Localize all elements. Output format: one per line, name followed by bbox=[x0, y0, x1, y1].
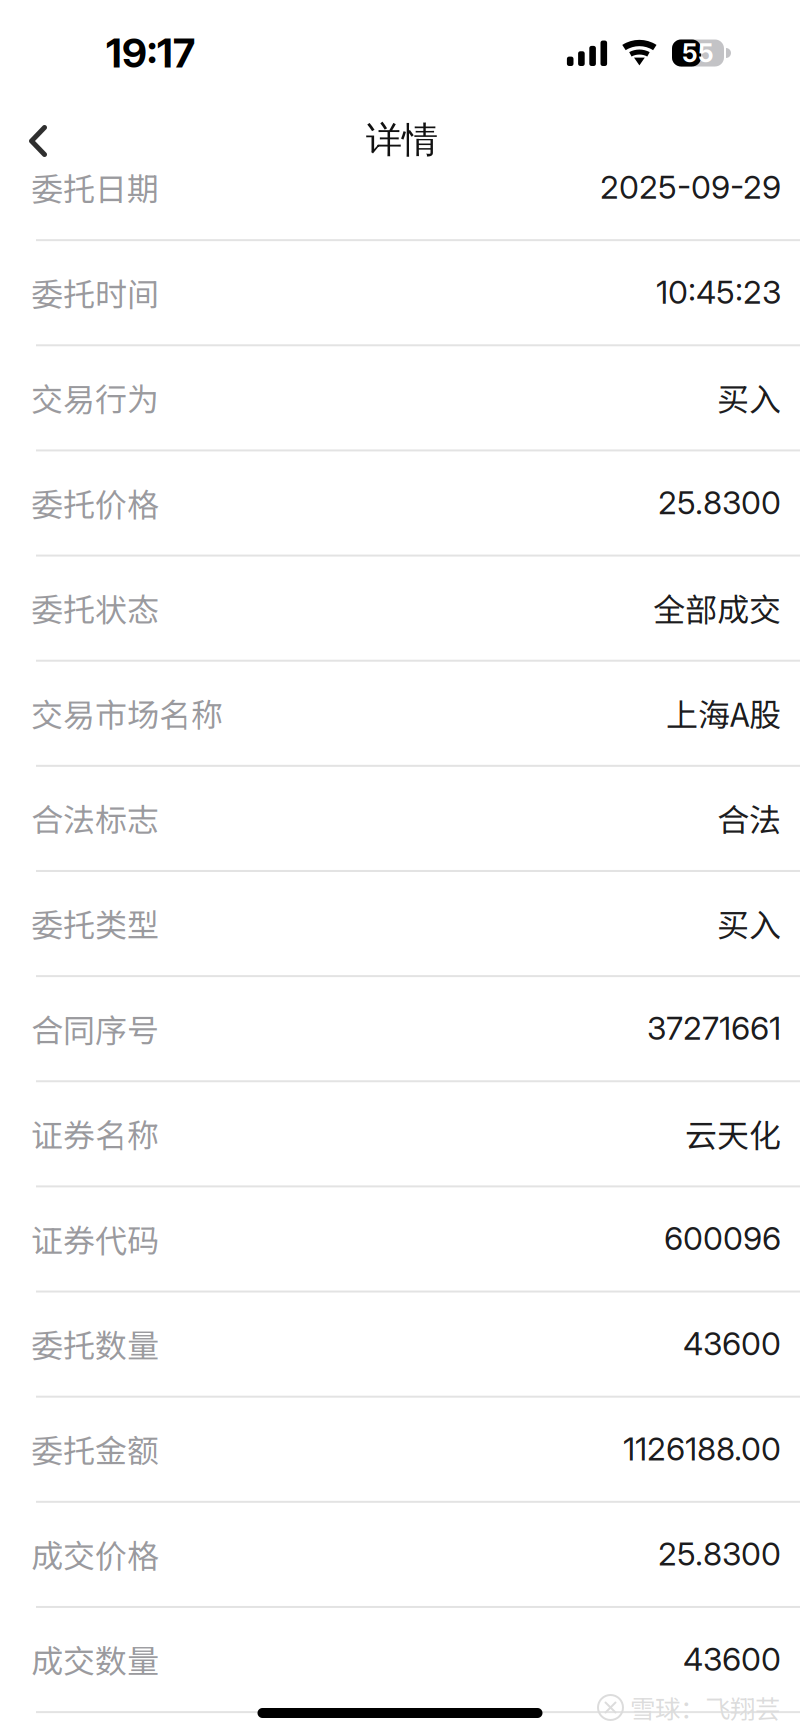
staticText: 证券代码 bbox=[31, 1215, 159, 1262]
staticText: 2025-09-29 bbox=[600, 168, 781, 206]
staticText: 证券名称 bbox=[31, 1110, 159, 1156]
staticText: 合同序号 bbox=[31, 1005, 159, 1051]
staticText: 37271661 bbox=[647, 1009, 781, 1047]
staticText: 上海A股 bbox=[666, 690, 781, 736]
staticText: 25.8300 bbox=[658, 483, 781, 522]
staticText: 交易市场名称 bbox=[31, 690, 223, 736]
button[interactable]: 证券代码 bbox=[0, 1187, 800, 1292]
button[interactable]: 委托价格 bbox=[0, 451, 800, 556]
button[interactable]: 委托类型 bbox=[0, 872, 800, 977]
staticText: 43600 bbox=[683, 1324, 781, 1363]
staticText: 合法标志 bbox=[31, 795, 159, 841]
staticText: 成交价格 bbox=[31, 1531, 159, 1577]
button[interactable]: 交易市场名称 bbox=[0, 662, 800, 767]
staticText: 1126188.00 bbox=[623, 1429, 781, 1468]
button[interactable]: Back bbox=[20, 101, 92, 173]
staticText: 详情 bbox=[366, 117, 438, 163]
staticText: 委托类型 bbox=[31, 900, 159, 946]
button[interactable]: 交易行为 bbox=[0, 346, 800, 451]
staticText: 委托价格 bbox=[31, 479, 159, 526]
staticText: 买入 bbox=[717, 900, 781, 946]
staticText: 600096 bbox=[664, 1219, 781, 1258]
staticText: 全部成交 bbox=[653, 584, 781, 631]
staticText: 雪球：飞翔芸 bbox=[630, 1689, 780, 1726]
button[interactable]: 委托日期 bbox=[0, 136, 800, 241]
button[interactable]: 委托状态 bbox=[0, 557, 800, 662]
button[interactable]: 成交数量 bbox=[0, 1608, 800, 1713]
staticText: 55 bbox=[682, 38, 714, 68]
staticText: 10:45:23 bbox=[656, 273, 781, 312]
button[interactable]: 合同序号 bbox=[0, 977, 800, 1082]
staticText: 合法 bbox=[717, 795, 781, 841]
staticText: 委托数量 bbox=[31, 1320, 159, 1367]
staticText: 买入 bbox=[717, 374, 781, 420]
button[interactable]: 合法标志 bbox=[0, 767, 800, 872]
button[interactable]: 成交价格 bbox=[0, 1503, 800, 1608]
staticText: 成交数量 bbox=[31, 1636, 159, 1682]
staticText: 委托日期 bbox=[31, 164, 159, 210]
staticText: 云天化 bbox=[685, 1110, 781, 1156]
button[interactable]: 委托数量 bbox=[0, 1292, 800, 1398]
button[interactable]: 委托时间 bbox=[0, 241, 800, 346]
staticText: 43600 bbox=[683, 1640, 781, 1678]
button[interactable]: 证券名称 bbox=[0, 1082, 800, 1187]
button[interactable]: 委托金额 bbox=[0, 1398, 800, 1503]
staticText: 委托时间 bbox=[31, 269, 159, 315]
staticText: 交易行为 bbox=[31, 374, 159, 420]
staticText: 委托金额 bbox=[31, 1426, 159, 1472]
staticText: 委托状态 bbox=[31, 584, 159, 631]
staticText: 19:17 bbox=[106, 29, 195, 77]
staticText: 25.8300 bbox=[658, 1534, 781, 1573]
